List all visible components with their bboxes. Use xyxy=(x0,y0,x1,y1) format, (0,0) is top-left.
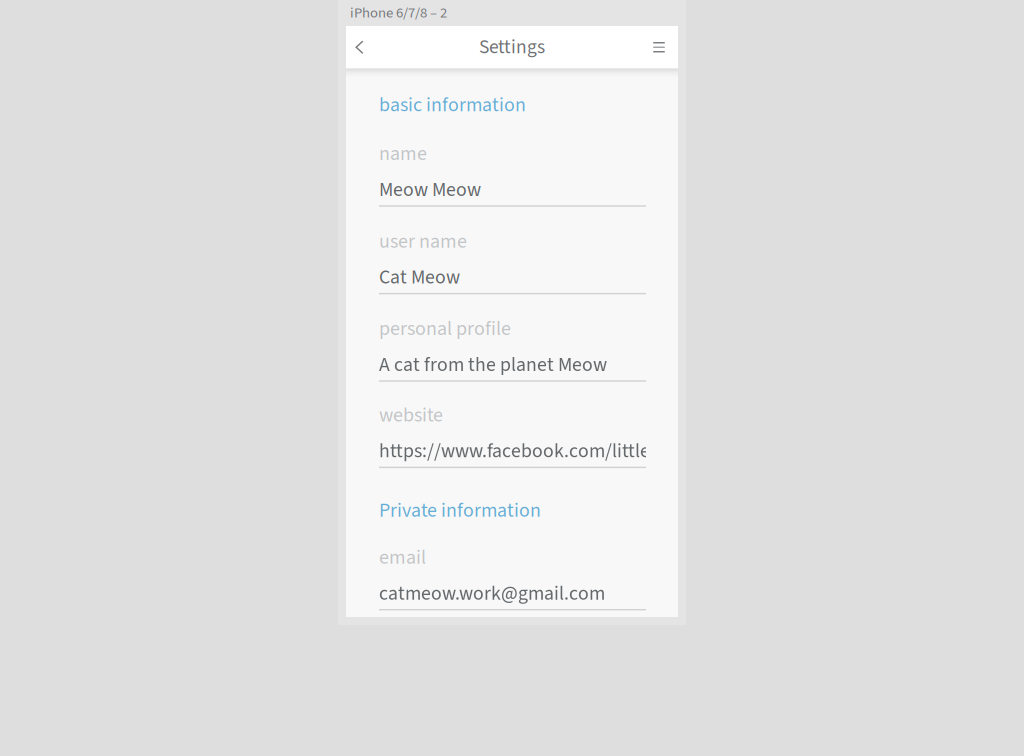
staticText: Meow Meow xyxy=(379,176,481,204)
staticText: Settings xyxy=(479,33,545,61)
button[interactable]: Back xyxy=(347,26,371,68)
staticText: iPhone 6/7/8 – 2 xyxy=(350,3,447,23)
staticText: https://www.facebook.com/littlecatmeow xyxy=(379,437,727,465)
button[interactable]: user name xyxy=(379,231,646,294)
staticText: Cat Meow xyxy=(379,263,460,291)
staticText: user name xyxy=(379,227,467,256)
staticText: catmeow.work@gmail.com xyxy=(379,579,605,607)
staticText: website xyxy=(379,401,443,429)
staticText: email xyxy=(379,543,426,572)
button[interactable]: email xyxy=(379,547,646,610)
button[interactable]: personal profile xyxy=(379,319,646,382)
staticText: basic information xyxy=(379,91,526,119)
staticText: name xyxy=(379,140,427,168)
staticText: A cat from the planet Meow xyxy=(379,351,607,379)
staticText: personal profile xyxy=(379,315,511,343)
button[interactable]: website xyxy=(379,405,646,468)
button[interactable]: name xyxy=(379,144,646,207)
staticText: Private information xyxy=(379,496,541,525)
button[interactable]: Menu xyxy=(647,26,671,68)
